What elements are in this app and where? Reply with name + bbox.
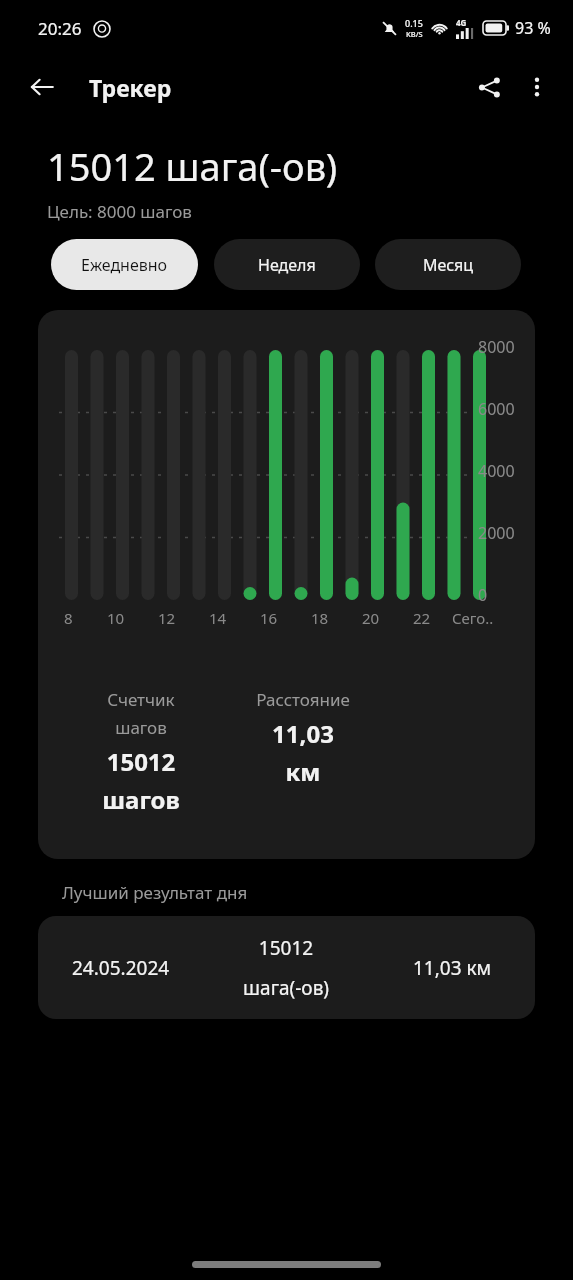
staticText: 4000 (478, 460, 515, 482)
button[interactable]: Back (18, 63, 66, 111)
staticText: Сего.. (452, 608, 494, 628)
button[interactable]: More options (513, 63, 561, 111)
staticText: Счетчик шагов (107, 688, 175, 739)
staticText: 16 (260, 608, 278, 628)
staticText: Лучший результат дня (62, 881, 248, 904)
staticText: 0 (478, 584, 488, 606)
staticText: 20:26 (38, 17, 82, 40)
staticText: 11,03 км (272, 717, 334, 788)
staticText: Месяц (423, 254, 474, 276)
button[interactable]: Неделя (214, 239, 360, 290)
staticText: 4G (456, 17, 467, 28)
button[interactable]: 24.05.2024 (38, 916, 535, 1019)
staticText: 18 (311, 608, 329, 628)
staticText: Неделя (258, 254, 316, 276)
staticText: 20 (362, 608, 380, 628)
staticText: 11,03 км (413, 955, 492, 981)
staticText: 22 (413, 608, 431, 628)
staticText: Ежедневно (81, 254, 168, 276)
staticText: 24.05.2024 (72, 955, 170, 981)
staticText: 6000 (478, 398, 515, 420)
staticText: 8 (64, 608, 73, 628)
staticText: Трекер (89, 72, 172, 103)
staticText: Расстояние (256, 688, 350, 711)
staticText: 15012 шагов (102, 745, 180, 816)
staticText: 15012 шага(-ов) (47, 140, 338, 192)
button[interactable]: Share (465, 63, 513, 111)
staticText: 12 (158, 608, 176, 628)
button[interactable]: 8000 (38, 310, 535, 859)
button[interactable]: Ежедневно (51, 239, 198, 290)
staticText: Цель: 8000 шагов (47, 200, 192, 223)
staticText: 93 % (515, 17, 551, 39)
staticText: 15012 шага(-ов) (243, 935, 329, 1001)
staticText: 14 (209, 608, 227, 628)
staticText: KB/S (406, 29, 423, 39)
staticText: 0.15 (405, 17, 423, 29)
button[interactable]: Месяц (375, 239, 521, 290)
staticText: 10 (107, 608, 125, 628)
staticText: 8000 (478, 336, 515, 358)
staticText: 2000 (478, 522, 515, 544)
